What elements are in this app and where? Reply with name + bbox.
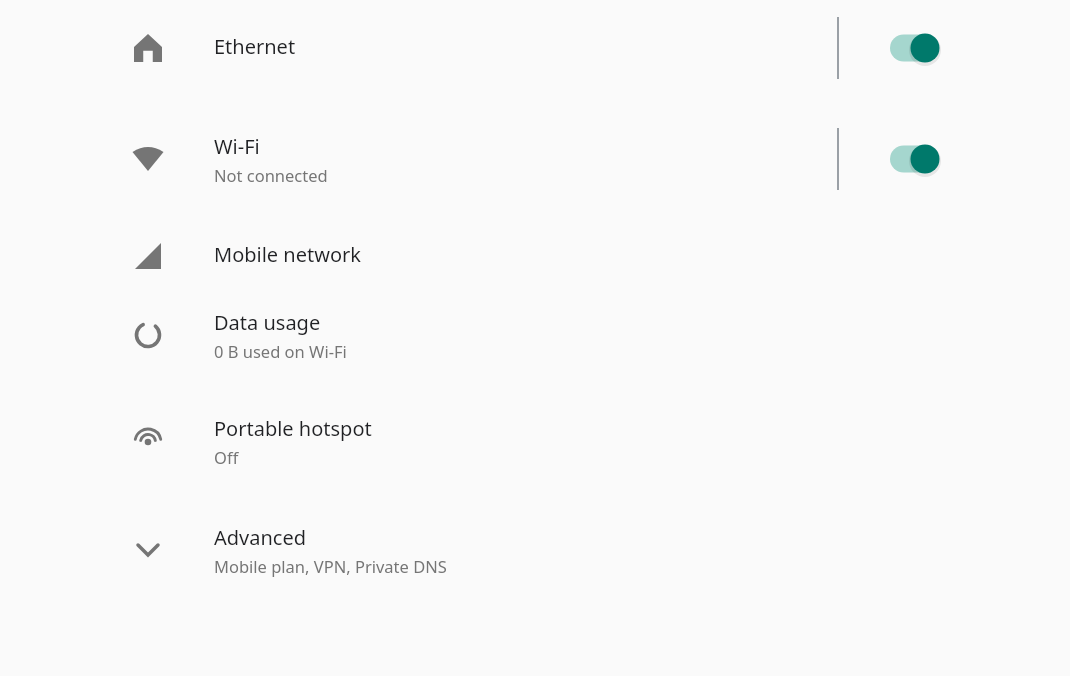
button[interactable]: Toggle Ethernet	[880, 24, 952, 72]
other: Data usage	[126, 313, 170, 357]
staticText: Portable hotspot	[214, 415, 372, 442]
button[interactable]: Data usage	[0, 281, 1070, 386]
staticText: Advanced	[214, 524, 306, 551]
other: Wi-Fi	[126, 137, 170, 181]
other: Advanced	[126, 528, 170, 572]
button[interactable]: Portable hotspot	[0, 386, 1070, 496]
staticText: 0 B used on Wi-Fi	[214, 340, 347, 362]
staticText: Mobile plan, VPN, Private DNS	[214, 555, 447, 577]
other: Ethernet	[126, 26, 170, 70]
button[interactable]: Toggle Wi-Fi	[880, 135, 952, 183]
button[interactable]: Ethernet	[0, 0, 1070, 98]
staticText: Ethernet	[214, 33, 296, 60]
button[interactable]: Wi-Fi	[0, 98, 1070, 195]
button[interactable]: Mobile network	[0, 195, 1070, 281]
other: Mobile network	[126, 234, 170, 278]
staticText: Off	[214, 446, 239, 468]
button[interactable]: Advanced	[0, 496, 1070, 606]
staticText: Not connected	[214, 164, 328, 186]
staticText: Mobile network	[214, 241, 361, 268]
other: Portable hotspot	[126, 419, 170, 463]
staticText: Data usage	[214, 309, 321, 336]
staticText: Wi-Fi	[214, 133, 260, 160]
